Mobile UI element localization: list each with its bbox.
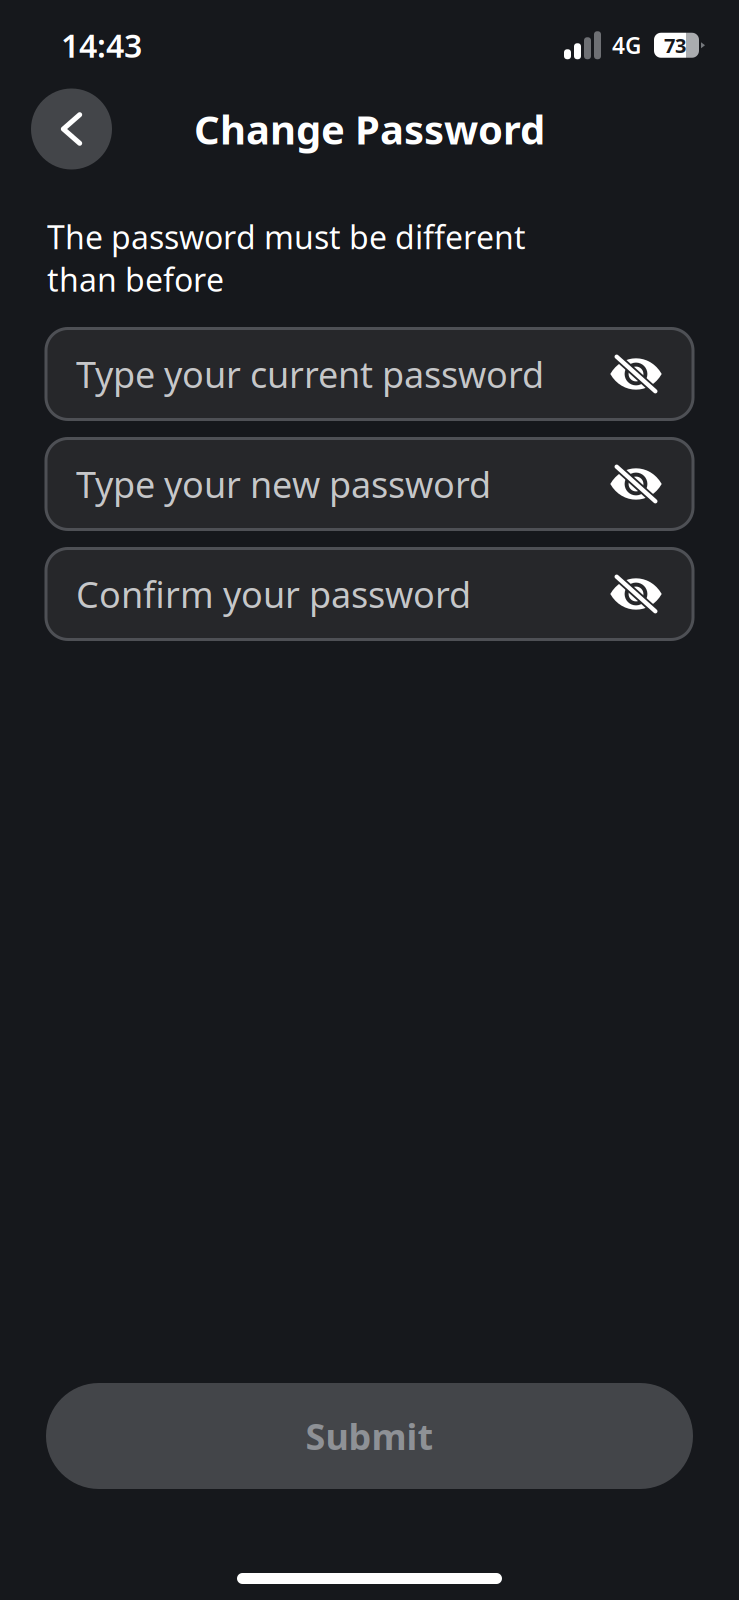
staticText: 73 <box>664 32 686 59</box>
button[interactable]: Back <box>31 88 112 169</box>
staticText: Type your current password <box>76 350 544 398</box>
button[interactable]: Show password <box>601 548 671 639</box>
staticText: 14:43 <box>61 24 142 66</box>
button[interactable]: Show password <box>601 328 671 419</box>
staticText: The password must be different than befo… <box>47 215 526 300</box>
button[interactable]: Show password <box>601 438 671 529</box>
staticText: Confirm your password <box>76 570 471 618</box>
staticText: Type your new password <box>76 460 491 508</box>
button[interactable]: Submit <box>46 1383 693 1489</box>
staticText: Submit <box>305 1412 433 1460</box>
staticText: Change Password <box>194 102 545 155</box>
staticText: 4G <box>612 30 641 60</box>
